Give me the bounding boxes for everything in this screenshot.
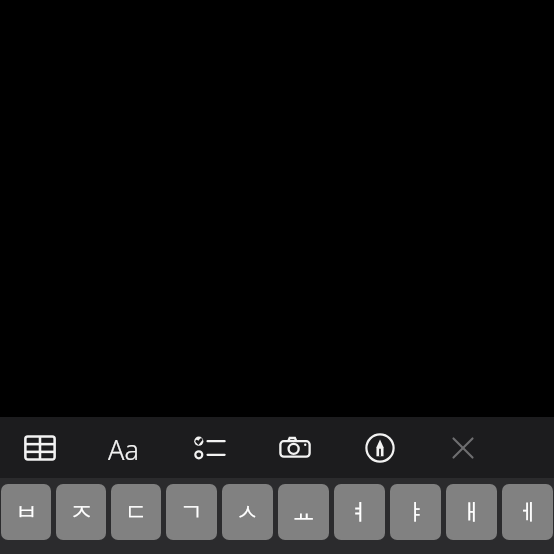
staticText: ㅑ <box>404 498 427 527</box>
staticText: ㄷ <box>125 498 148 527</box>
staticText: ㅂ <box>15 498 38 527</box>
staticText: ㅐ <box>460 498 483 527</box>
button[interactable]: ㅈ <box>56 484 106 540</box>
button[interactable]: ㅔ <box>502 484 553 540</box>
button[interactable]: Camera <box>251 417 338 478</box>
staticText: Aa <box>108 431 139 465</box>
button[interactable]: ㅅ <box>222 484 273 540</box>
button[interactable]: Markup <box>338 417 421 478</box>
staticText: ㅛ <box>292 498 315 527</box>
staticText: ㅈ <box>70 498 93 527</box>
button[interactable]: ㄷ <box>111 484 161 540</box>
staticText: ㅔ <box>516 498 539 527</box>
staticText: ㅕ <box>348 498 371 527</box>
button[interactable]: Checklist <box>166 417 251 478</box>
button[interactable]: Table <box>0 417 80 478</box>
button[interactable]: ㅐ <box>446 484 497 540</box>
button[interactable]: Close <box>421 417 504 478</box>
button[interactable]: ㅕ <box>334 484 385 540</box>
button[interactable]: ㅑ <box>390 484 441 540</box>
staticText: ㅅ <box>236 498 259 527</box>
button[interactable]: ㅛ <box>278 484 329 540</box>
button[interactable]: ㄱ <box>166 484 217 540</box>
staticText: ㄱ <box>180 498 203 527</box>
button[interactable]: Text format <box>80 417 166 478</box>
button[interactable]: ㅂ <box>1 484 51 540</box>
